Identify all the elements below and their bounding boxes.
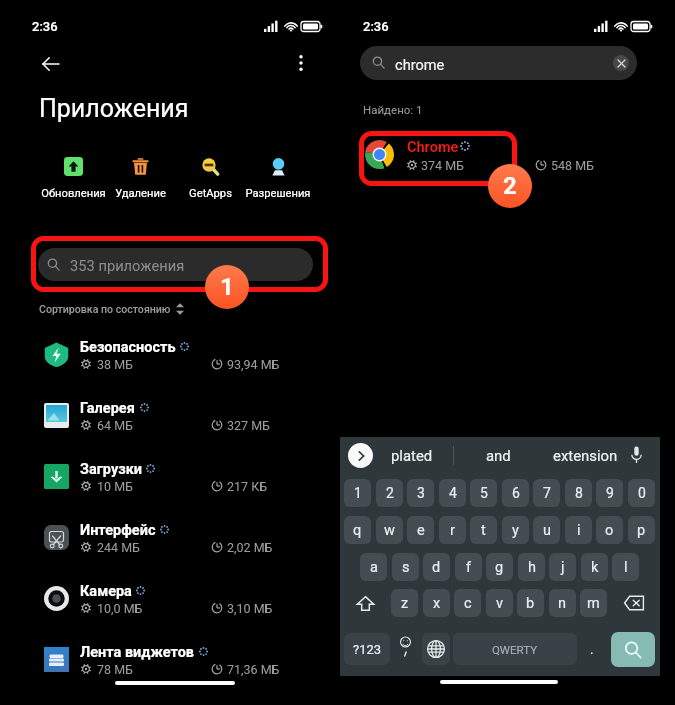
- button[interactable]: Back: [35, 48, 67, 80]
- staticText: j: [561, 559, 565, 576]
- staticText: Галерея: [80, 400, 135, 417]
- button[interactable]: x: [423, 589, 450, 617]
- button[interactable]: p: [628, 516, 655, 544]
- staticText: h: [528, 559, 536, 576]
- button[interactable]: GetApps: [174, 152, 246, 204]
- button[interactable]: Удаление: [104, 152, 176, 204]
- button[interactable]: Period: [579, 633, 605, 665]
- button[interactable]: 2: [488, 164, 532, 208]
- button[interactable]: Загрузки: [38, 451, 318, 503]
- staticText: 217 КБ: [227, 479, 268, 494]
- button[interactable]: Камера: [38, 573, 318, 625]
- button[interactable]: Интерфейс: [38, 512, 318, 564]
- button[interactable]: y: [502, 516, 529, 544]
- button[interactable]: plated: [377, 440, 446, 471]
- button[interactable]: s: [392, 553, 419, 581]
- button[interactable]: Switch language: [422, 633, 450, 665]
- button[interactable]: Безопасность: [38, 329, 318, 381]
- button[interactable]: Symbols: [344, 633, 390, 665]
- staticText: w: [384, 522, 395, 539]
- button[interactable]: Expand suggestions: [348, 443, 373, 468]
- button[interactable]: l: [612, 553, 639, 581]
- button[interactable]: Clear search: [613, 55, 629, 71]
- button[interactable]: 353 приложения: [38, 248, 313, 281]
- button[interactable]: 1: [344, 479, 371, 507]
- button[interactable]: 4: [439, 479, 466, 507]
- button[interactable]: b: [517, 589, 544, 617]
- button[interactable]: h: [518, 553, 545, 581]
- staticText: extension: [553, 447, 618, 464]
- staticText: 548 МБ: [551, 158, 594, 173]
- staticText: p: [637, 522, 646, 539]
- staticText: plated: [391, 447, 433, 464]
- staticText: 2: [503, 172, 517, 200]
- button[interactable]: 6: [502, 479, 529, 507]
- button[interactable]: f: [455, 553, 482, 581]
- staticText: 2:36: [32, 19, 58, 34]
- button[interactable]: extension: [539, 440, 631, 471]
- button[interactable]: t: [470, 516, 497, 544]
- button[interactable]: z: [391, 589, 418, 617]
- button[interactable]: g: [486, 553, 513, 581]
- button[interactable]: More options: [285, 47, 317, 79]
- staticText: 64 МБ: [97, 418, 133, 433]
- button[interactable]: q: [344, 516, 371, 544]
- button[interactable]: Shift: [344, 589, 386, 617]
- staticText: x: [433, 595, 441, 612]
- button[interactable]: k: [581, 553, 608, 581]
- button[interactable]: 2: [376, 479, 403, 507]
- staticText: 3,10 МБ: [227, 601, 273, 616]
- staticText: 9: [606, 485, 614, 501]
- button[interactable]: n: [549, 589, 576, 617]
- button[interactable]: Разрешения: [242, 152, 314, 204]
- staticText: Удаление: [115, 187, 166, 200]
- staticText: Обновления: [41, 187, 106, 200]
- staticText: 1: [220, 273, 234, 301]
- button[interactable]: 8: [565, 479, 592, 507]
- staticText: 7: [543, 485, 551, 501]
- button[interactable]: 5: [470, 479, 497, 507]
- button[interactable]: 7: [533, 479, 560, 507]
- button[interactable]: r: [439, 516, 466, 544]
- button[interactable]: u: [533, 516, 560, 544]
- staticText: m: [587, 595, 600, 612]
- button[interactable]: Chrome: [362, 132, 514, 184]
- staticText: 8: [575, 485, 583, 501]
- staticText: .: [590, 642, 594, 657]
- staticText: 38 МБ: [97, 357, 133, 372]
- button[interactable]: Лента виджетов: [38, 634, 318, 686]
- button[interactable]: a: [360, 553, 387, 581]
- button[interactable]: 0: [628, 479, 655, 507]
- button[interactable]: m: [580, 589, 607, 617]
- button[interactable]: Search: [611, 632, 655, 667]
- button[interactable]: Space: [453, 633, 577, 665]
- button[interactable]: and: [471, 440, 525, 471]
- staticText: g: [495, 559, 504, 576]
- staticText: r: [450, 522, 455, 539]
- button[interactable]: o: [596, 516, 623, 544]
- button[interactable]: 9: [596, 479, 623, 507]
- staticText: 327 МБ: [227, 418, 270, 433]
- button[interactable]: 3: [407, 479, 434, 507]
- button[interactable]: d: [423, 553, 450, 581]
- button[interactable]: v: [486, 589, 513, 617]
- staticText: 2: [386, 485, 394, 501]
- staticText: 71,36 МБ: [227, 662, 280, 677]
- button[interactable]: i: [565, 516, 592, 544]
- button[interactable]: Галерея: [38, 390, 318, 442]
- button[interactable]: w: [376, 516, 403, 544]
- button[interactable]: chrome: [360, 46, 637, 80]
- button[interactable]: e: [407, 516, 434, 544]
- button[interactable]: 1: [205, 265, 249, 309]
- button[interactable]: j: [549, 553, 576, 581]
- button[interactable]: Backspace: [612, 589, 656, 617]
- staticText: 244 МБ: [97, 540, 140, 555]
- button[interactable]: Сортировка по состоянию: [33, 296, 191, 320]
- staticText: Безопасность: [80, 339, 176, 356]
- staticText: 3: [417, 485, 425, 501]
- staticText: 0: [638, 485, 646, 501]
- button[interactable]: Emoji: [391, 633, 421, 665]
- staticText: v: [496, 595, 504, 612]
- button[interactable]: Обновления: [37, 152, 109, 204]
- button[interactable]: c: [454, 589, 481, 617]
